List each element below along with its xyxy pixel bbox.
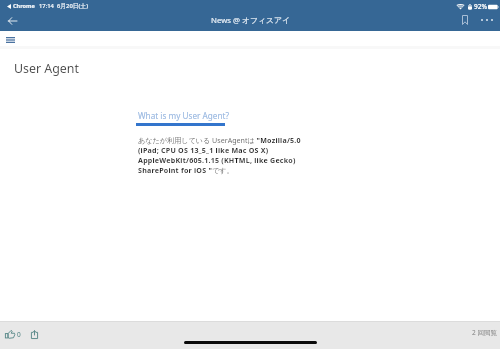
button[interactable]: More options xyxy=(478,11,495,28)
staticText: あなたが利用している UserAgentは "Mozilla/5.0 xyxy=(138,135,301,145)
staticText: Chrome xyxy=(13,2,35,10)
staticText: 17:14 xyxy=(39,2,54,10)
staticText: SharePoint for iOS "です。 xyxy=(138,165,234,175)
staticText: 92% xyxy=(474,2,487,11)
staticText: User Agent xyxy=(14,60,79,77)
button[interactable]: Back xyxy=(5,13,20,28)
staticText: (iPad; CPU OS 13_5_1 like Mac OS X) xyxy=(138,145,269,155)
button[interactable]: Like xyxy=(4,328,22,341)
staticText: AppleWebKit/605.1.15 (KHTML, like Gecko) xyxy=(138,155,296,165)
staticText: 0 xyxy=(17,330,21,339)
button[interactable]: Share xyxy=(29,328,40,341)
staticText: 2 回閲覧 xyxy=(472,328,497,337)
staticText: News @ オフィスアイ xyxy=(211,15,290,26)
button[interactable]: Bookmark xyxy=(457,12,472,27)
staticText: 6月20日(土) xyxy=(57,2,88,10)
button[interactable]: What is my User Agent? xyxy=(138,110,229,121)
button[interactable]: Menu xyxy=(2,32,18,48)
